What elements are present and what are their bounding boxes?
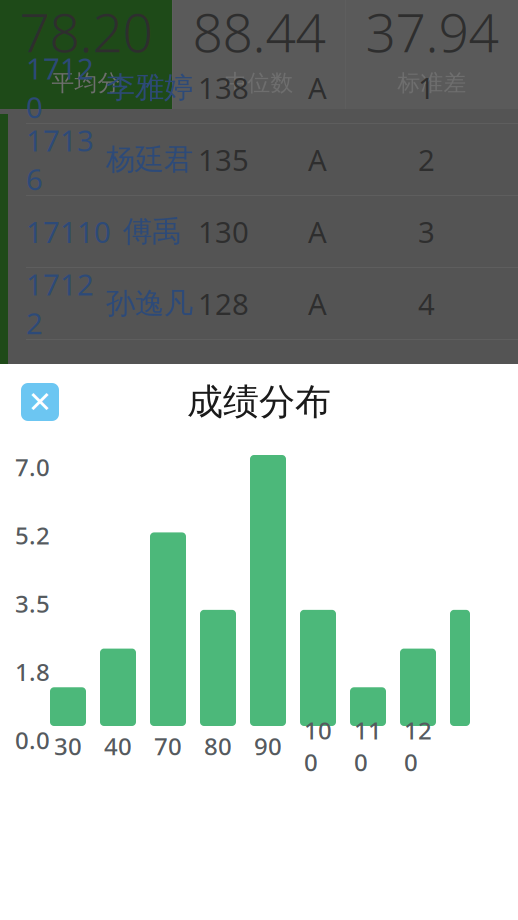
staticText: 17120 (26, 48, 94, 126)
staticText: 7.0 (15, 451, 50, 483)
button[interactable]: 17136 (0, 124, 518, 195)
staticText: 130 (198, 212, 249, 251)
staticText: 37.94 (365, 0, 498, 67)
staticText: 17110 (26, 212, 111, 251)
staticText: A (308, 284, 327, 323)
staticText: 40 (104, 730, 132, 762)
staticText: 1 (418, 68, 435, 107)
staticText: 1.8 (15, 656, 50, 688)
staticText: 孙逸凡 (106, 285, 193, 321)
staticText: 0.0 (15, 724, 50, 756)
staticText: 90 (254, 730, 282, 762)
staticText: 100 (304, 714, 332, 778)
staticText: 80 (204, 730, 232, 762)
staticText: 杨廷君 (106, 141, 193, 177)
staticText: 李雅婷 (106, 69, 193, 105)
staticText: A (308, 68, 327, 107)
staticText: 128 (198, 284, 249, 323)
staticText: 135 (198, 140, 249, 179)
staticText: 傅禹 (123, 213, 181, 249)
staticText: 78.20 (19, 0, 152, 67)
staticText: 70 (154, 730, 182, 762)
staticText: 标准差 (397, 69, 466, 97)
staticText: 3 (418, 212, 435, 251)
staticText: 17122 (26, 264, 94, 342)
staticText: 4 (418, 284, 435, 323)
staticText: 88.44 (192, 0, 325, 67)
staticText: 138 (198, 68, 249, 107)
button[interactable]: 17110 (0, 196, 518, 267)
staticText: 120 (404, 714, 432, 778)
staticText: 中位数 (224, 69, 293, 97)
staticText: 3.5 (15, 588, 50, 619)
staticText: 2 (418, 140, 435, 179)
button[interactable]: 17122 (0, 268, 518, 339)
button[interactable]: Close (21, 383, 59, 421)
staticText: ✕ (27, 385, 52, 419)
staticText: 110 (354, 714, 382, 778)
staticText: 5.2 (15, 519, 50, 551)
staticText: 成绩分布 (187, 380, 331, 424)
staticText: 30 (54, 730, 82, 762)
staticText: 平均分 (51, 69, 120, 97)
button[interactable]: 17120 (0, 52, 518, 123)
staticText: A (308, 212, 327, 251)
staticText: 17136 (26, 120, 94, 198)
staticText: A (308, 140, 327, 179)
